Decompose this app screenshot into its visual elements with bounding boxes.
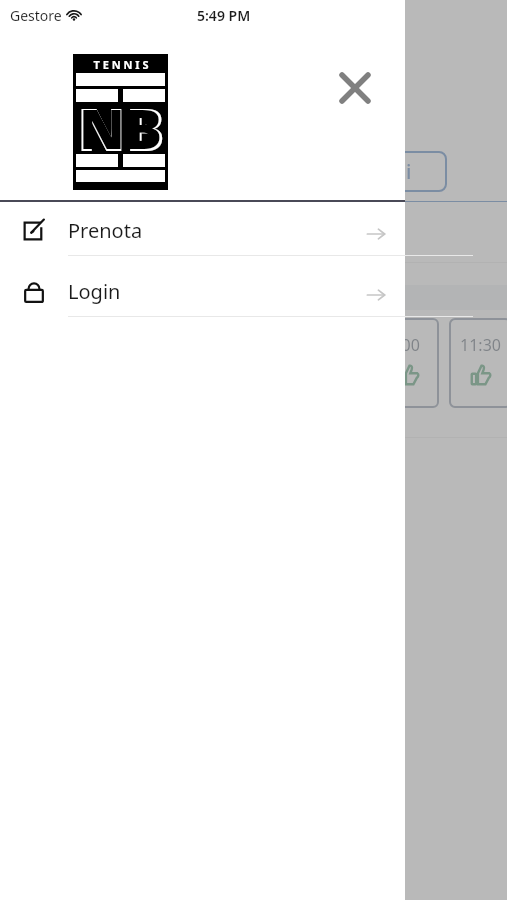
staticText: T E N N I S <box>93 57 149 71</box>
staticText: NB <box>77 89 165 167</box>
button[interactable]: Close <box>327 60 383 116</box>
button[interactable]: Login <box>0 263 405 317</box>
staticText: 5:49 PM <box>197 6 251 25</box>
staticText: NB <box>79 90 162 165</box>
staticText: Login <box>68 278 121 305</box>
staticText: Prenota <box>68 217 143 244</box>
staticText: :00 <box>397 334 420 356</box>
staticText: 11:30 <box>460 334 501 356</box>
staticText: i <box>406 158 412 185</box>
button[interactable]: Prenota <box>0 202 405 256</box>
staticText: Gestore <box>10 6 62 25</box>
